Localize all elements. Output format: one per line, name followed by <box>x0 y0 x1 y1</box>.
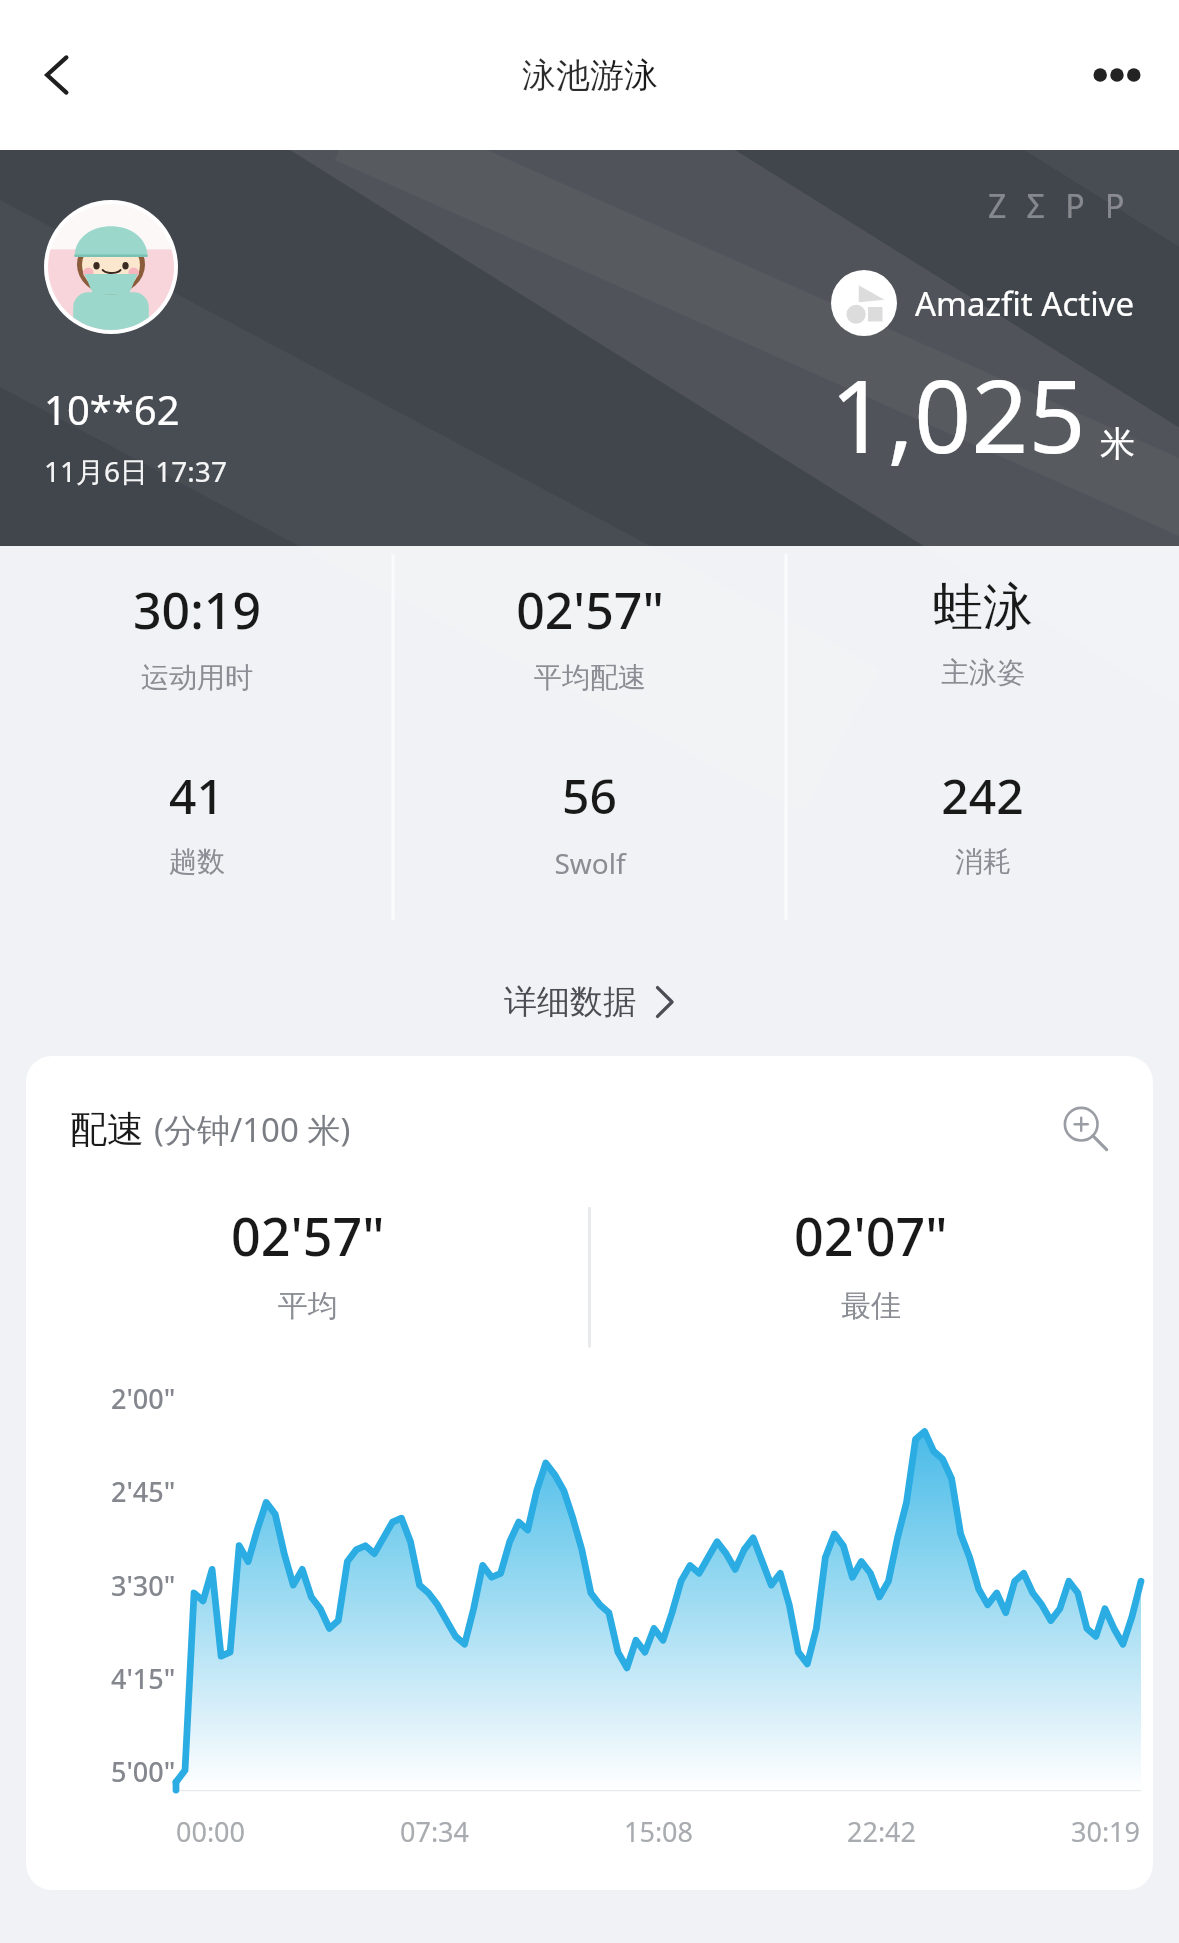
staticText: 蛙泳 <box>933 576 1033 639</box>
button[interactable]: 02'57" <box>393 572 786 699</box>
staticText: 2'45" <box>111 1473 176 1510</box>
staticText: 11月6日 17:37 <box>44 452 227 490</box>
staticText: 02'57" <box>231 1200 385 1271</box>
staticText: 米 <box>1100 422 1135 466</box>
button[interactable]: 详细数据 <box>474 967 706 1037</box>
staticText: 趟数 <box>169 844 225 879</box>
staticText: 02'07" <box>794 1200 948 1271</box>
button[interactable]: Profile avatar <box>44 200 178 334</box>
staticText: 41 <box>169 763 224 828</box>
button[interactable]: 30:19 <box>0 572 393 699</box>
button[interactable]: 02'07" <box>589 1200 1153 1325</box>
staticText: 平均配速 <box>534 660 646 695</box>
staticText: 56 <box>562 763 617 828</box>
staticText: 22:42 <box>847 1813 917 1850</box>
button[interactable]: Zoom chart <box>1055 1098 1117 1160</box>
staticText: 2'00" <box>111 1380 176 1417</box>
staticText: Amazfit Active <box>915 281 1135 326</box>
staticText: 平均 <box>278 1287 338 1325</box>
staticText: 15:08 <box>624 1813 694 1850</box>
button[interactable]: 41 <box>0 759 393 883</box>
button[interactable]: 02'57" <box>26 1200 589 1325</box>
staticText: 运动用时 <box>141 660 253 695</box>
staticText: 242 <box>941 763 1024 828</box>
staticText: 5'00" <box>111 1753 176 1790</box>
staticText: Swolf <box>554 844 626 882</box>
staticText: 最佳 <box>841 1287 901 1325</box>
staticText: 00:00 <box>176 1813 246 1850</box>
button[interactable]: 56 <box>393 759 786 886</box>
staticText: 泳池游泳 <box>522 54 658 97</box>
staticText: 消耗 <box>955 844 1011 879</box>
button[interactable]: Back <box>16 33 100 117</box>
staticText: 详细数据 <box>504 981 636 1023</box>
staticText: 主泳姿 <box>941 655 1025 690</box>
staticText: 3'30" <box>111 1567 176 1604</box>
staticText: 4'15" <box>111 1660 176 1697</box>
staticText: 02'57" <box>516 576 664 644</box>
staticText: 10**62 <box>44 382 180 436</box>
button[interactable]: More options <box>1075 33 1159 117</box>
staticText: Z Σ P P <box>988 184 1131 228</box>
staticText: 1,025 <box>830 346 1086 482</box>
button[interactable]: 242 <box>786 759 1179 883</box>
staticText: 30:19 <box>133 576 261 644</box>
staticText: 配速 <box>70 1106 144 1153</box>
staticText: 30:19 <box>1071 1813 1141 1850</box>
staticText: 07:34 <box>400 1813 470 1850</box>
button[interactable]: 蛙泳 <box>786 572 1179 694</box>
staticText: (分钟/100 米) <box>154 1107 351 1152</box>
